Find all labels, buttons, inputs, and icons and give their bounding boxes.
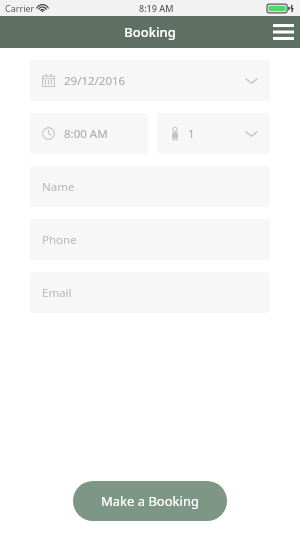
staticText: Phone xyxy=(42,232,77,248)
staticText: Make a Booking xyxy=(101,492,199,510)
staticText: Booking xyxy=(124,23,176,41)
button[interactable]: 29/12/2016 xyxy=(30,60,270,101)
button[interactable]: 1 xyxy=(157,113,270,154)
button[interactable]: Menu xyxy=(266,16,300,48)
button[interactable]: Name xyxy=(30,166,270,207)
button[interactable]: Phone xyxy=(30,219,270,260)
button[interactable]: 8:00 AM xyxy=(30,113,148,154)
staticText: Email xyxy=(42,285,72,301)
staticText: 8:19 AM xyxy=(139,2,174,14)
staticText: Carrier xyxy=(5,2,35,14)
staticText: 1 xyxy=(188,126,195,142)
button[interactable]: Make a Booking xyxy=(73,481,227,521)
button[interactable]: Email xyxy=(30,272,270,313)
staticText: Name xyxy=(42,179,75,195)
staticText: 29/12/2016 xyxy=(64,73,126,89)
staticText: 8:00 AM xyxy=(64,126,108,142)
